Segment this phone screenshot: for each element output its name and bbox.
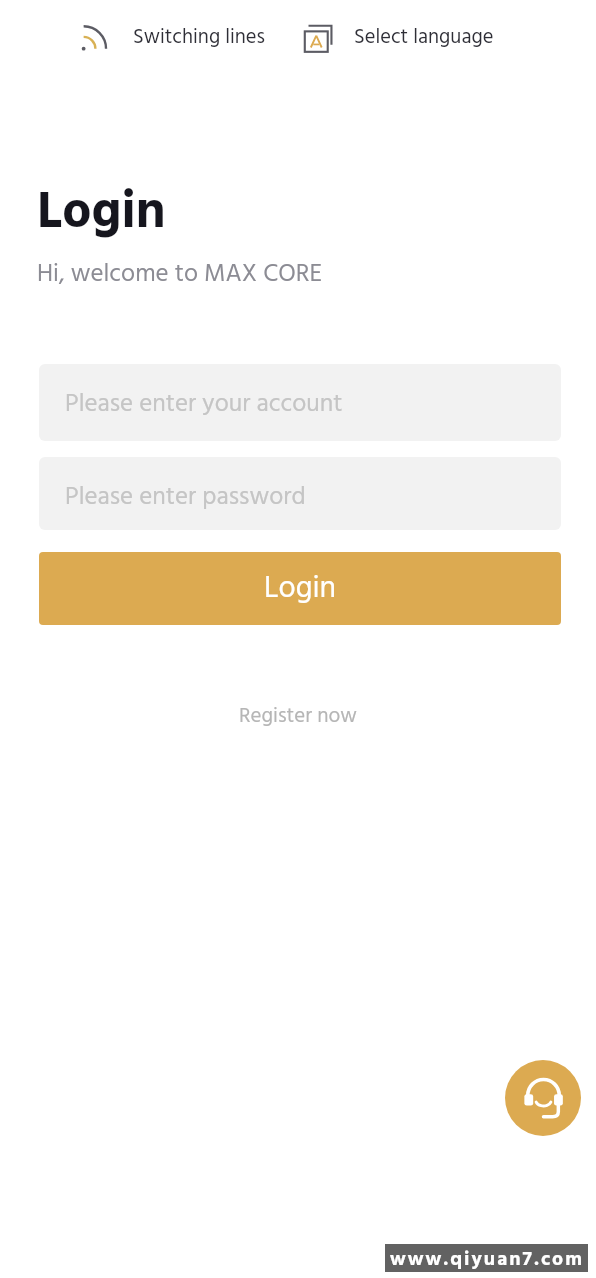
- button[interactable]: Select language: [296, 14, 500, 60]
- button[interactable]: Login: [39, 552, 561, 625]
- staticText: Switching lines: [133, 21, 265, 54]
- staticText: Hi, welcome to MAX CORE: [37, 255, 322, 295]
- button[interactable]: Please enter your account: [39, 364, 561, 441]
- staticText: Login: [264, 565, 337, 614]
- staticText: Select language: [354, 21, 494, 54]
- staticText: www.qiyuan7.com: [390, 1244, 584, 1272]
- button[interactable]: Please enter password: [39, 457, 561, 530]
- staticText: Login: [37, 173, 166, 255]
- staticText: Please enter your account: [65, 385, 343, 425]
- button[interactable]: Customer service: [505, 1060, 581, 1136]
- button[interactable]: Register now: [239, 700, 357, 734]
- staticText: Please enter password: [65, 478, 306, 518]
- button[interactable]: Switching lines: [74, 14, 270, 60]
- staticText: Register now: [239, 700, 357, 734]
